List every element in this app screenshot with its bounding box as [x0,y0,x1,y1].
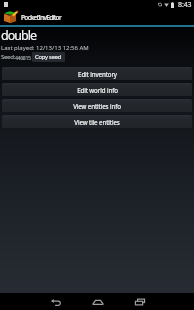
staticText: 446815 [15,54,31,61]
staticText: View entities info [73,102,121,110]
button[interactable]: Edit inventory [2,67,192,80]
staticText: 8:43 [178,0,192,9]
button[interactable]: PocketInvEditor [0,9,194,25]
button[interactable]: Back [47,293,64,310]
button[interactable]: Copy seed [32,52,65,62]
staticText: PocketInvEditor [21,13,62,22]
staticText: Last played: 12/13/13 12:56 AM [1,44,89,52]
button[interactable]: Recent apps [131,293,148,310]
staticText: Edit inventory [78,70,117,78]
staticText: Seed: [1,53,15,61]
staticText: Edit world info [77,86,118,94]
button[interactable]: Home [89,293,106,310]
staticText: View tile entities [74,118,120,126]
button[interactable]: Edit world info [2,83,192,96]
button[interactable]: View entities info [2,99,192,112]
button[interactable]: View tile entities [2,115,192,128]
staticText: Copy seed [35,53,62,61]
staticText: double [1,27,36,44]
